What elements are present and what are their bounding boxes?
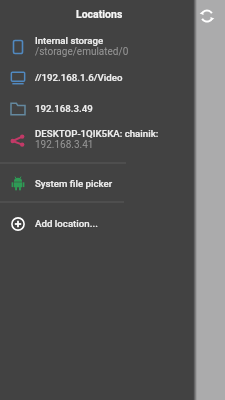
staticText: System file picker bbox=[35, 178, 113, 189]
staticText: DESKTOP-1QIK5KA: chainik: bbox=[35, 128, 159, 139]
button[interactable]: 192.168.3.49 bbox=[0, 93, 193, 124]
button[interactable]: System file picker bbox=[0, 168, 193, 199]
staticText: Add location... bbox=[35, 218, 98, 229]
button[interactable]: DESKTOP-1QIK5KA: chainik: bbox=[0, 124, 193, 155]
staticText: Locations bbox=[76, 8, 123, 20]
button[interactable]: //192.168.1.6/Video bbox=[0, 62, 193, 93]
button[interactable]: Add location... bbox=[0, 208, 193, 239]
staticText: //192.168.1.6/Video bbox=[35, 72, 123, 83]
button[interactable]: Locations bbox=[3, 0, 196, 28]
staticText: 192.168.3.49 bbox=[35, 103, 93, 114]
staticText: /storage/emulated/0 bbox=[35, 46, 129, 58]
staticText: Internal storage bbox=[35, 35, 104, 46]
button[interactable]: Internal storage bbox=[0, 31, 193, 62]
button[interactable]: Refresh bbox=[194, 3, 220, 29]
staticText: 192.168.3.41 bbox=[35, 139, 94, 151]
